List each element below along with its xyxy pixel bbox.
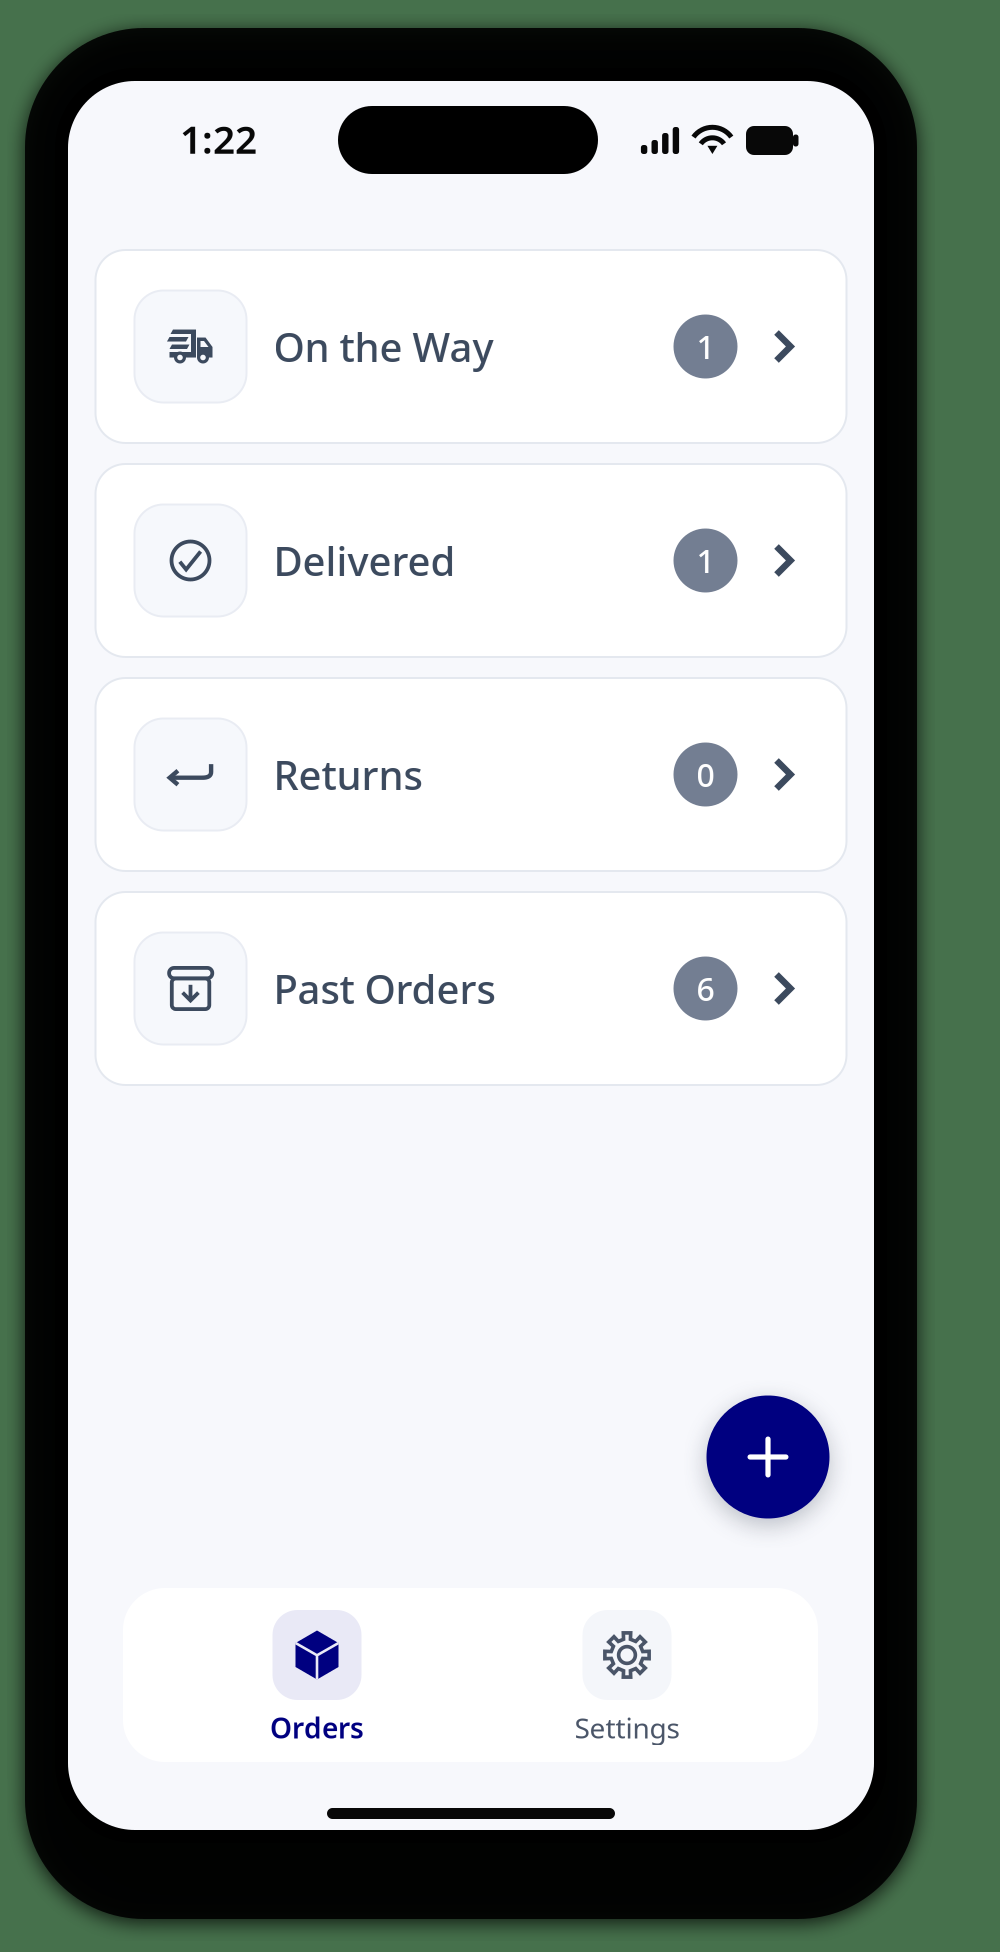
button[interactable]: Delivered <box>95 464 846 657</box>
staticText: Settings <box>574 1709 679 1746</box>
staticText: On the Way <box>273 320 493 373</box>
staticText: Past Orders <box>273 962 495 1015</box>
button[interactable]: Past Orders <box>95 892 846 1085</box>
staticText: 6 <box>696 967 714 1010</box>
staticText: 0 <box>696 753 714 796</box>
button[interactable]: Orders <box>199 1588 434 1762</box>
button[interactable]: Settings <box>509 1588 744 1762</box>
staticText: Delivered <box>273 534 455 587</box>
staticText: 1 <box>696 539 714 582</box>
staticText: 1:22 <box>180 113 257 164</box>
staticText: 1 <box>696 325 714 368</box>
staticText: Returns <box>273 748 422 801</box>
button[interactable]: On the Way <box>95 250 846 443</box>
button[interactable]: Returns <box>95 678 846 871</box>
staticText: Orders <box>270 1709 364 1746</box>
button[interactable]: New order <box>706 1395 829 1518</box>
